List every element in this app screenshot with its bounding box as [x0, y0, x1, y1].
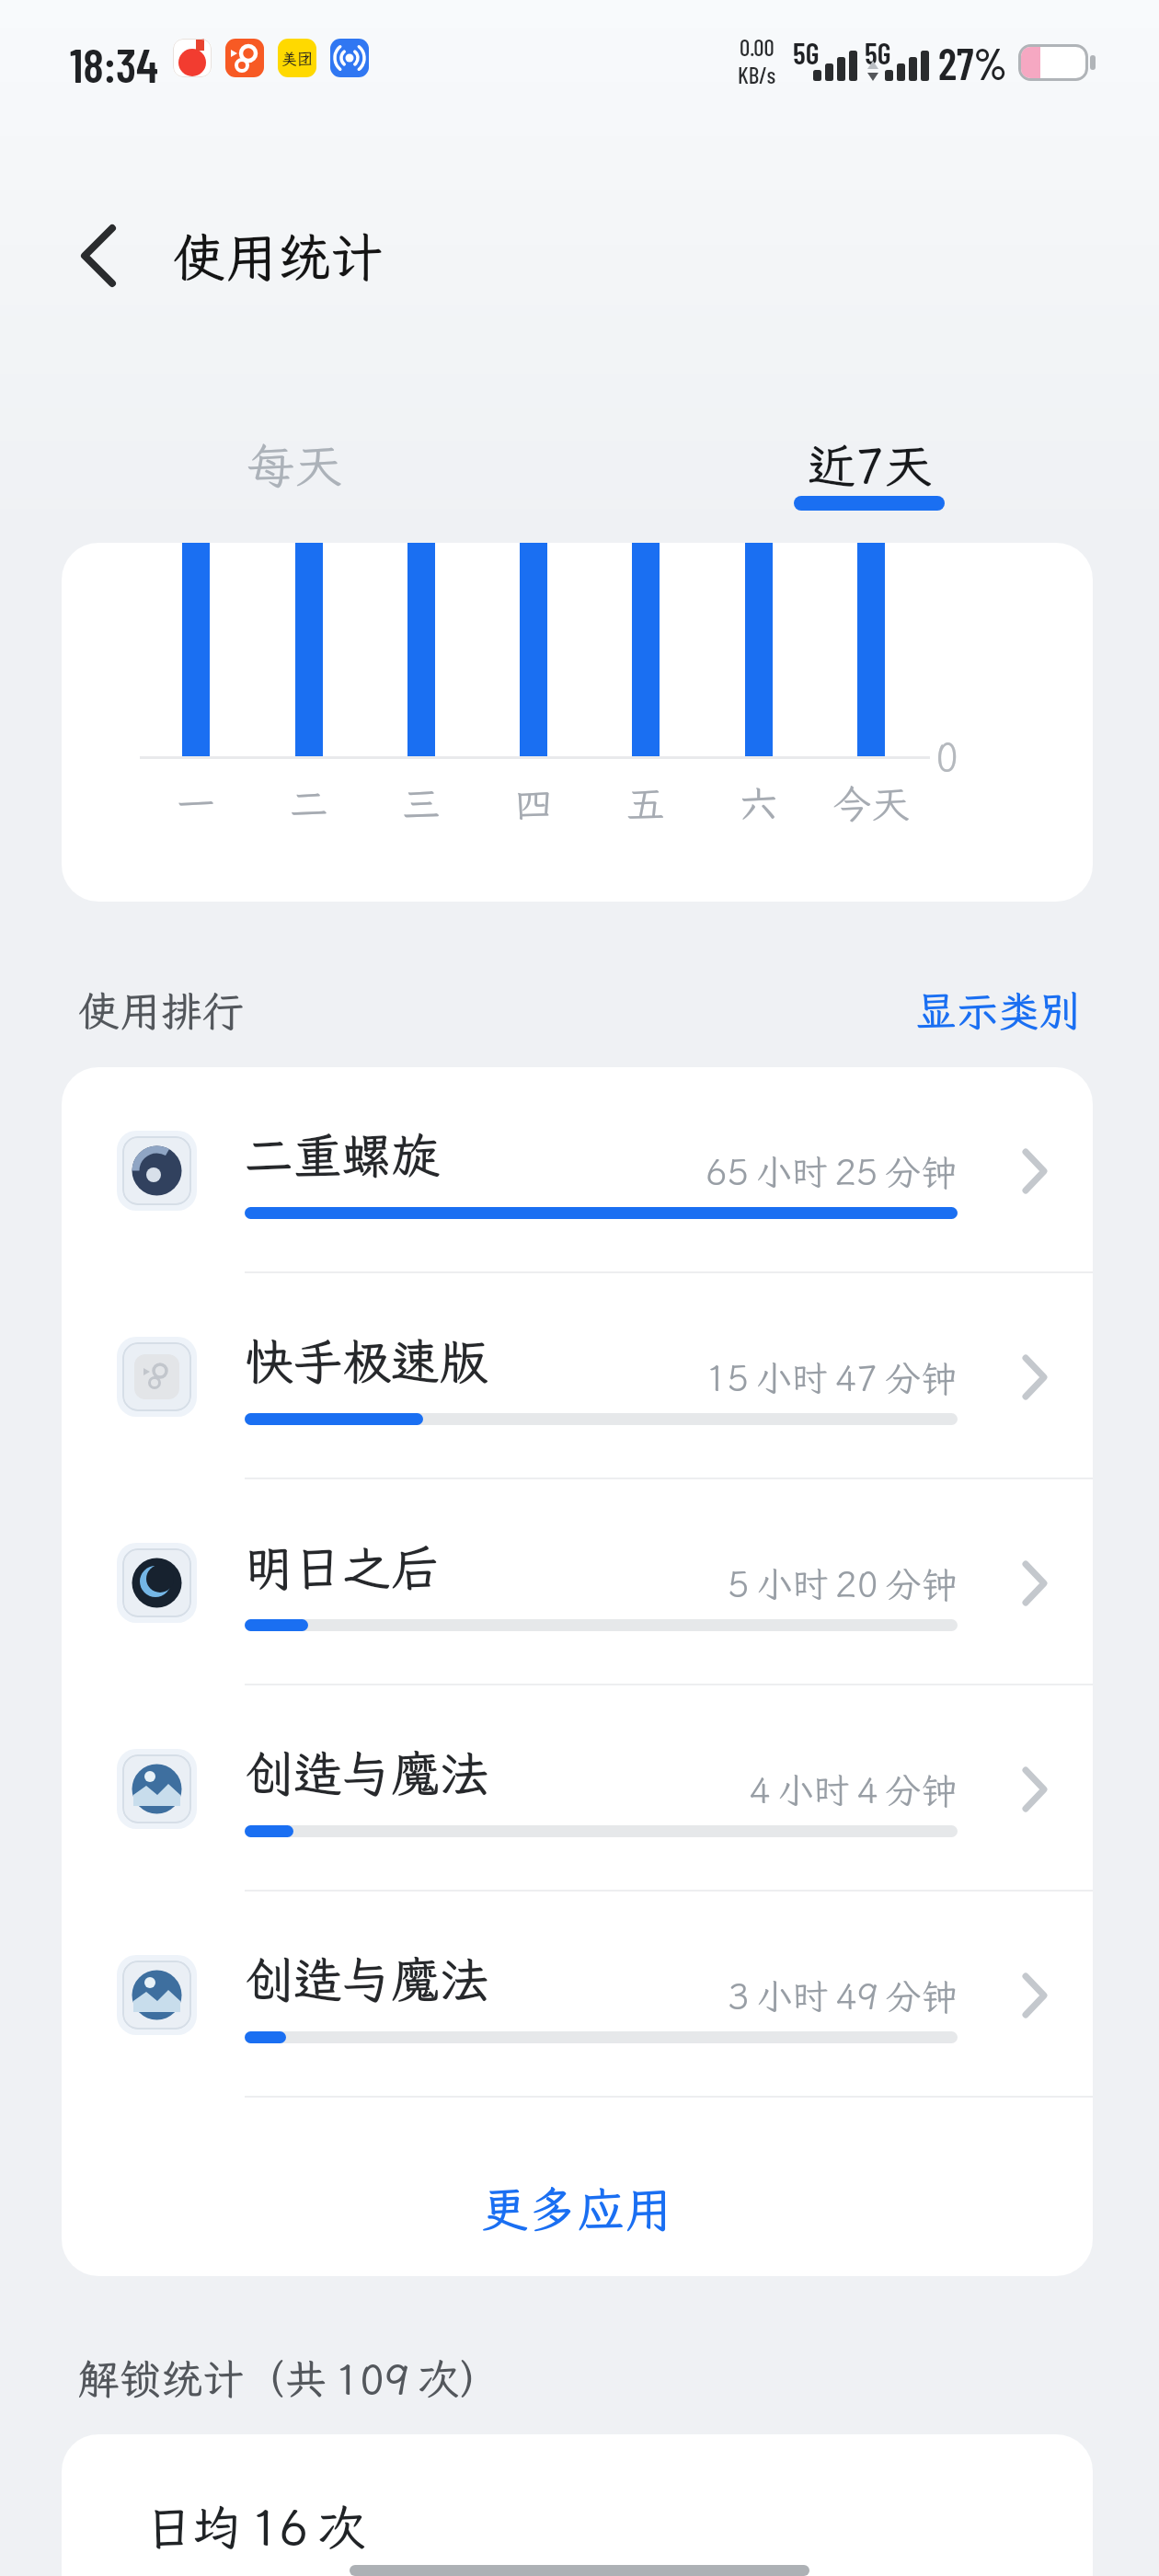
staticText: 创造与魔法	[245, 1741, 488, 1805]
staticText: 明日之后	[245, 1535, 440, 1599]
button[interactable]	[64, 221, 131, 291]
staticText: 美团	[281, 48, 313, 68]
staticText: 近7天	[808, 433, 933, 494]
staticText: 5G	[865, 35, 891, 66]
staticText: 六	[740, 778, 779, 829]
staticText: 二	[290, 778, 329, 829]
staticText: 每天	[247, 433, 343, 494]
button[interactable]	[62, 1068, 1093, 1274]
button[interactable]	[62, 1274, 1093, 1480]
staticText: 更多应用	[481, 2177, 673, 2234]
staticText: 五	[626, 778, 666, 829]
staticText: 二重螺旋	[245, 1122, 440, 1187]
button[interactable]	[62, 1892, 1093, 2099]
staticText: 4 小时 4 分钟	[749, 1766, 958, 1813]
staticText: 65 小时 25 分钟	[706, 1148, 958, 1195]
staticText: 15 小时 47 分钟	[706, 1354, 958, 1401]
button[interactable]: 近7天	[786, 433, 954, 494]
staticText: 三	[402, 778, 442, 829]
button[interactable]	[62, 1480, 1093, 1686]
staticText: 显示类别	[915, 983, 1082, 1038]
staticText: KB/s	[738, 61, 776, 88]
staticText: 使用排行	[78, 983, 245, 1038]
staticText: 四	[514, 778, 554, 829]
staticText: 日均 16 次	[145, 2495, 366, 2558]
staticText: 18:34	[70, 35, 158, 86]
staticText: 解锁统计（共 109 次）	[78, 2352, 501, 2406]
staticText: 使用统计	[173, 222, 383, 291]
staticText: 今天	[832, 778, 911, 829]
staticText: 快手极速版	[245, 1328, 488, 1393]
button[interactable]: 显示类别	[828, 981, 1082, 1040]
staticText: 3 小时 49 分钟	[728, 1972, 958, 2019]
button[interactable]: 每天	[207, 433, 382, 494]
staticText: 0	[935, 731, 959, 782]
button[interactable]	[62, 1686, 1093, 1892]
staticText: 5 小时 20 分钟	[728, 1560, 958, 1607]
staticText: 创造与魔法	[245, 1947, 488, 2011]
button[interactable]: 更多应用	[62, 2177, 1093, 2234]
staticText: 27%	[938, 37, 1007, 81]
staticText: 0.00	[740, 33, 775, 61]
staticText: 一	[177, 778, 216, 829]
staticText: 5G	[793, 35, 820, 66]
